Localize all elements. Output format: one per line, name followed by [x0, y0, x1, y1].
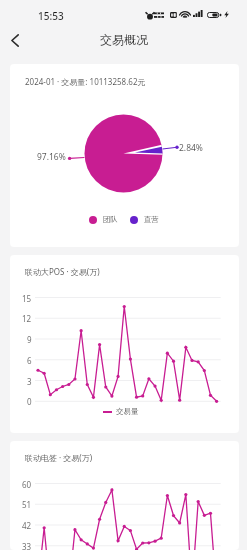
staticText: 联动大POS · 交易(万): [25, 266, 100, 277]
staticText: 51: [22, 499, 32, 510]
staticText: 2.84%: [179, 142, 203, 154]
button[interactable]: Back: [3, 28, 27, 52]
staticText: 6: [27, 355, 32, 366]
staticText: 97.16%: [37, 151, 66, 163]
staticText: 9: [27, 334, 32, 345]
staticText: 0: [27, 396, 32, 407]
staticText: 33: [22, 541, 32, 550]
staticText: 交易概况: [100, 32, 148, 47]
staticText: 42: [22, 520, 32, 531]
staticText: 15:53: [38, 9, 64, 23]
button[interactable]: 直营: [130, 215, 159, 224]
staticText: 2024-01 · 交易量: 10113258.62元: [25, 76, 146, 87]
staticText: 60: [22, 479, 32, 490]
staticText: 12: [22, 313, 32, 324]
staticText: 3: [27, 376, 32, 387]
staticText: 直营: [144, 215, 159, 224]
staticText: 联动电签 · 交易(万): [25, 452, 93, 463]
staticText: 15: [22, 293, 32, 304]
staticText: 交易量: [116, 407, 139, 416]
button[interactable]: 团队: [89, 215, 118, 224]
staticText: 团队: [103, 215, 118, 224]
